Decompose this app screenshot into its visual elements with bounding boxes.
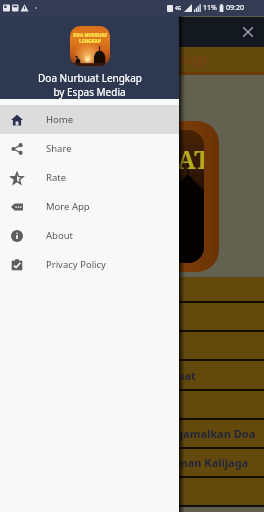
staticText: Doa Sunan Kalijaga xyxy=(143,455,249,470)
staticText: 11% xyxy=(203,3,217,13)
staticText: DOA NURBUAT xyxy=(73,32,108,38)
button[interactable] xyxy=(0,277,264,303)
staticText: by Espas Media xyxy=(53,85,126,99)
button[interactable]: Doa Nurbuat xyxy=(0,361,264,391)
staticText: Doa Nurbuat xyxy=(125,368,196,383)
staticText: Share xyxy=(46,142,72,155)
button[interactable]: Share xyxy=(0,134,179,163)
staticText: More App xyxy=(46,200,90,213)
button[interactable]: Doa Sapu Jagad xyxy=(0,478,264,507)
button[interactable]: Home xyxy=(0,105,179,134)
staticText: kap xyxy=(179,49,208,69)
staticText: Privacy Policy xyxy=(46,258,106,271)
staticText: 4G xyxy=(175,5,182,12)
staticText: 09:20 xyxy=(226,3,244,13)
button[interactable]: Tata Cara Mengamalkan Doa xyxy=(0,420,264,449)
button[interactable]: Doa Sunan Kalijaga xyxy=(0,449,264,478)
staticText: Doa Nurbuat Lengkap xyxy=(38,71,142,85)
staticText: LENGKAP xyxy=(79,38,101,44)
button[interactable]: Rate xyxy=(0,163,179,192)
button[interactable]: Khasiat Doa Nurbuat xyxy=(0,332,264,361)
button[interactable]: Terjemahan Doa Nurbuat xyxy=(0,391,264,420)
button[interactable]: About xyxy=(0,221,179,250)
staticText: About xyxy=(46,229,73,242)
staticText: AT xyxy=(177,142,204,176)
staticText: Rate xyxy=(46,171,67,184)
button[interactable]: More App xyxy=(0,192,179,221)
button[interactable]: Privacy Policy xyxy=(0,250,179,279)
staticText: Tata Cara Mengamalkan Doa xyxy=(98,426,256,441)
staticText: Home xyxy=(46,113,74,126)
button[interactable]: Close ad xyxy=(241,25,255,39)
button[interactable]: Keutamaan Doa Nurbuat xyxy=(0,303,264,332)
